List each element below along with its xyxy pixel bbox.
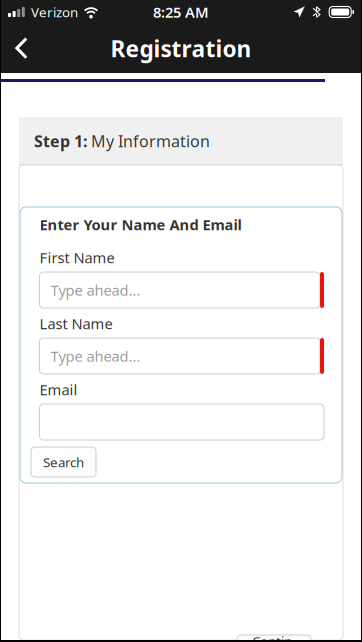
staticText: Step 1: (34, 130, 91, 152)
staticText: Last Name (39, 314, 112, 333)
staticText: Verizon (31, 3, 78, 21)
button[interactable]: Continue (237, 635, 311, 642)
staticText: First Name (39, 248, 114, 267)
staticText: My Information (91, 130, 210, 152)
staticText: 8:25 AM (153, 2, 209, 22)
staticText: Enter Your Name And Email (39, 215, 241, 234)
staticText: Email (39, 380, 77, 399)
staticText: Registration (110, 33, 251, 63)
staticText: Type ahead... (50, 280, 140, 300)
staticText: Continue (252, 632, 296, 642)
button[interactable]: Back (1, 24, 46, 72)
button[interactable]: Search (31, 447, 96, 477)
staticText: Type ahead... (50, 346, 140, 366)
staticText: Search (43, 453, 84, 471)
